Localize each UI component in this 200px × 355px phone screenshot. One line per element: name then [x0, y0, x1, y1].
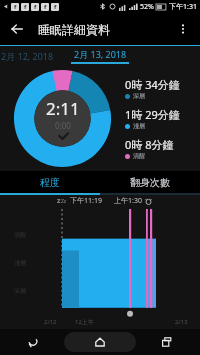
button[interactable]: Back: [0, 329, 66, 355]
staticText: 2:11: [46, 97, 80, 120]
staticText: 睡眠詳細資料: [38, 22, 110, 37]
staticText: 程度: [40, 176, 60, 189]
button[interactable]: Home: [66, 329, 133, 355]
staticText: f: [54, 3, 57, 11]
staticText: 上午1:30: [114, 196, 142, 206]
staticText: 淺層: [133, 122, 145, 130]
staticText: f: [14, 3, 17, 11]
staticText: 深層: [133, 92, 145, 100]
button[interactable]: Recent apps: [133, 329, 200, 355]
staticText: 52%: [140, 2, 154, 12]
staticText: z: [57, 196, 61, 206]
button[interactable]: 0時 8分鐘: [125, 137, 174, 160]
staticText: 2月 13, 2018: [74, 48, 127, 60]
staticText: 2/12: [44, 318, 57, 326]
button[interactable]: 翻身次數: [100, 171, 200, 193]
staticText: 0:00: [55, 120, 71, 131]
staticText: f: [34, 3, 37, 11]
staticText: 翻身次數: [130, 176, 170, 189]
staticText: 清醒: [133, 152, 145, 160]
staticText: 清醒: [14, 231, 26, 239]
button[interactable]: More options: [170, 16, 196, 42]
button[interactable]: Back: [4, 16, 30, 42]
staticText: f: [24, 3, 27, 11]
button[interactable]: 2月 13, 2018: [71, 48, 129, 64]
staticText: 0時 8分鐘: [125, 137, 174, 152]
staticText: 深層: [14, 287, 26, 295]
button[interactable]: 程度: [0, 171, 100, 193]
staticText: 12上午: [75, 318, 94, 326]
staticText: 下午1:31: [169, 2, 197, 12]
staticText: 0時 34分鐘: [125, 77, 180, 92]
staticText: 下午11:19: [70, 196, 102, 206]
button[interactable]: 0時 34分鐘: [125, 77, 180, 100]
button[interactable]: 1時 29分鐘: [125, 107, 180, 130]
button[interactable]: 2月 12, 2018: [1, 50, 54, 62]
staticText: 1時 29分鐘: [125, 107, 180, 122]
staticText: 淺層: [14, 259, 26, 267]
staticText: f: [44, 3, 47, 11]
staticText: 2/13: [175, 318, 188, 326]
staticText: Zz: [61, 198, 67, 205]
